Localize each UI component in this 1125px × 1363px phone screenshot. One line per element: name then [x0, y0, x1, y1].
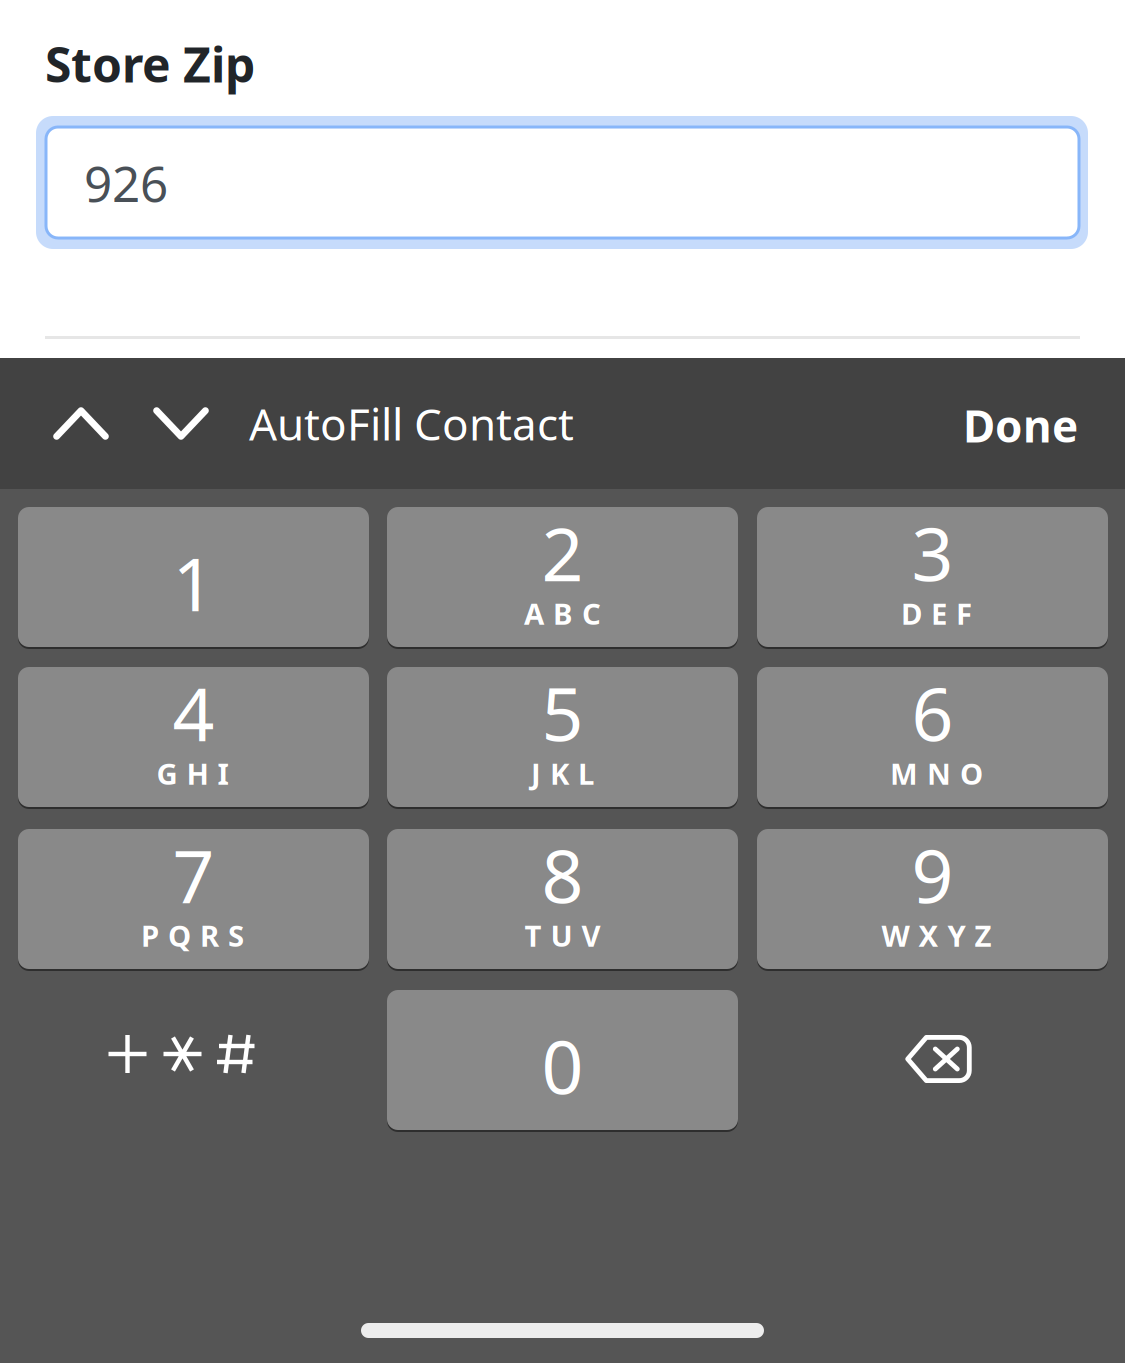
staticText: PQRS — [141, 916, 244, 955]
button[interactable]: 1 — [18, 507, 369, 647]
staticText: 2 — [541, 504, 583, 601]
button[interactable]: 9 — [757, 829, 1108, 969]
button[interactable]: Next field — [133, 358, 229, 489]
button[interactable]: Done — [898, 358, 1078, 489]
staticText: 9 — [911, 826, 953, 923]
staticText: 926 — [84, 150, 168, 215]
button[interactable]: 5 — [387, 667, 738, 807]
staticText: 0 — [541, 1017, 583, 1114]
staticText: 3 — [911, 504, 953, 601]
staticText: 1 — [172, 534, 214, 631]
button[interactable]: AutoFill Contact — [249, 358, 579, 489]
staticText: 6 — [911, 664, 953, 761]
button[interactable]: 2 — [387, 507, 738, 647]
staticText: AutoFill Contact — [249, 394, 574, 453]
staticText: TUV — [524, 916, 600, 955]
staticText: 7 — [172, 826, 214, 923]
button[interactable]: 7 — [18, 829, 369, 969]
staticText: Done — [963, 396, 1078, 455]
button[interactable]: 6 — [757, 667, 1108, 807]
button[interactable]: Previous field — [33, 358, 129, 489]
staticText: JKL — [531, 754, 594, 793]
staticText: Store Zip — [45, 32, 255, 96]
staticText: 5 — [541, 664, 583, 761]
button[interactable]: Plus star pound — [6, 984, 357, 1124]
button[interactable]: 0 — [387, 990, 738, 1130]
staticText: WXYZ — [881, 916, 991, 955]
button[interactable]: 3 — [757, 507, 1108, 647]
staticText: GHI — [156, 754, 228, 793]
staticText: ABC — [524, 594, 601, 633]
staticText: MNO — [890, 754, 983, 793]
staticText: DEF — [901, 594, 972, 633]
button[interactable]: 8 — [387, 829, 738, 969]
button[interactable]: Delete — [763, 989, 1114, 1129]
staticText: 8 — [541, 826, 583, 923]
button[interactable]: 4 — [18, 667, 369, 807]
staticText: 4 — [172, 664, 214, 761]
